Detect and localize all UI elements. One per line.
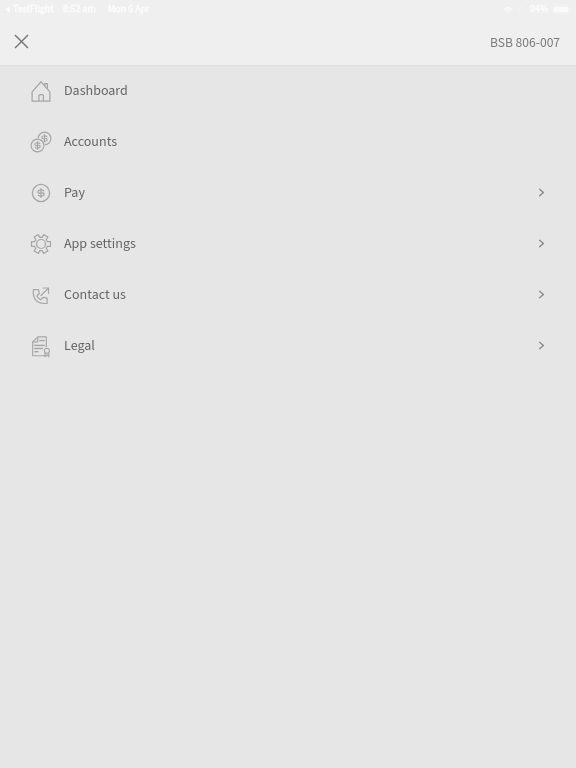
button[interactable]: Close [5,25,38,58]
staticText: Legal [64,336,95,356]
staticText: Dashboard [64,81,128,101]
button[interactable]: App settings [0,218,576,269]
staticText: Contact us [64,285,126,305]
button[interactable]: Dashboard [0,65,576,116]
staticText: Pay [64,183,85,203]
staticText: 8:52 am [63,2,96,16]
staticText: App settings [64,234,136,254]
button[interactable]: Contact us [0,269,576,320]
staticText: 94% [530,2,549,16]
staticText: Accounts [64,132,118,152]
button[interactable]: Legal [0,320,576,371]
staticText: BSB 806-007 [490,33,561,52]
button[interactable]: Pay [0,167,576,218]
button[interactable]: Accounts [0,116,576,167]
staticText: TestFlight [13,2,54,16]
staticText: Mon 6 Apr [108,2,150,16]
